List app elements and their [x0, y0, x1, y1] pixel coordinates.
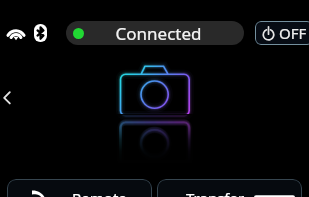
button[interactable]: Remote	[7, 179, 152, 197]
button[interactable]: Wi-Fi	[6, 26, 26, 41]
staticText: Connected	[84, 22, 233, 45]
button[interactable]: Connected	[66, 21, 244, 45]
staticText: Remote	[72, 188, 127, 197]
button[interactable]: Transfer	[157, 179, 302, 197]
button[interactable]: Back	[0, 88, 14, 108]
staticText: OFF	[279, 23, 307, 43]
staticText: Transfer	[186, 188, 245, 197]
button[interactable]: Bluetooth	[34, 24, 47, 42]
button[interactable]: OFF	[255, 21, 309, 45]
